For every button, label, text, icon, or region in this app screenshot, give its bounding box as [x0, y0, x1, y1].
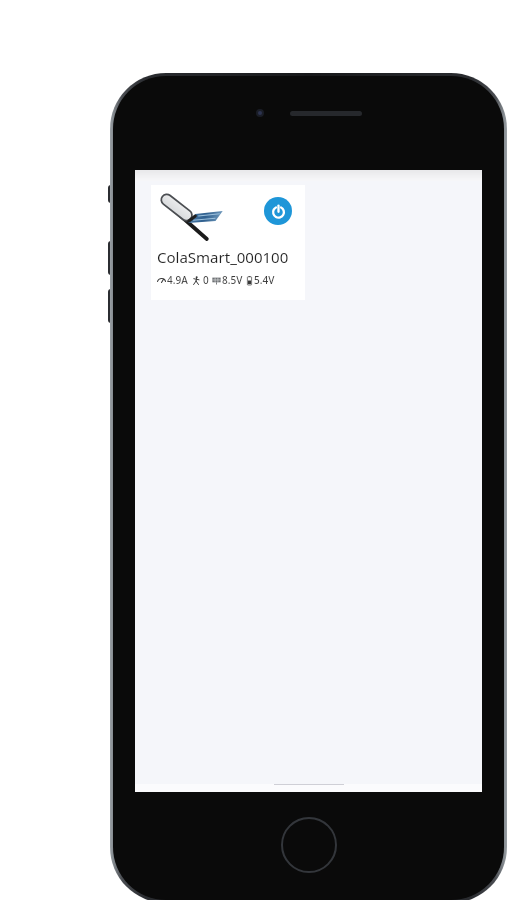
staticText: ColaSmart_000100 — [157, 247, 289, 267]
staticText: 0 — [203, 273, 209, 287]
staticText: 4.9A — [167, 273, 188, 287]
button[interactable]: Power toggle — [151, 185, 305, 300]
button[interactable]: Power toggle — [264, 197, 292, 225]
staticText: 5.4V — [254, 273, 275, 287]
staticText: 8.5V — [222, 273, 243, 287]
